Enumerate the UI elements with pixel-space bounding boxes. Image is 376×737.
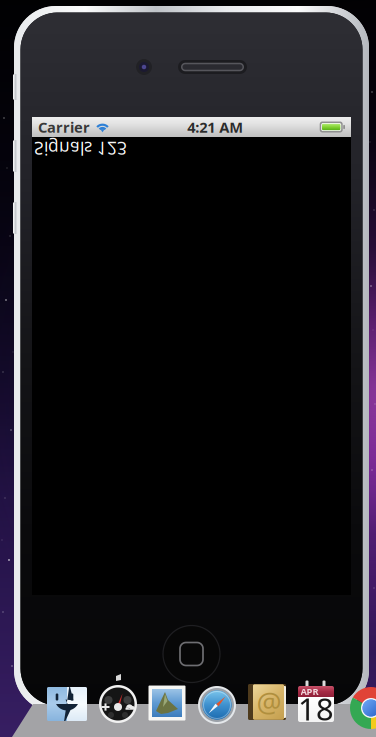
staticText: APR <box>300 685 318 698</box>
button[interactable]: Home <box>161 624 221 684</box>
button[interactable]: Google Chrome <box>350 687 376 729</box>
staticText: @ <box>256 683 281 721</box>
button[interactable]: Calendar <box>298 686 334 722</box>
staticText: 18 <box>298 688 334 729</box>
button[interactable]: Finder <box>47 687 87 721</box>
button[interactable]: Mail <box>148 685 185 720</box>
staticText: Carrier <box>38 117 90 137</box>
staticText: Signals 123 <box>34 137 127 160</box>
button[interactable]: Safari <box>198 686 236 724</box>
button[interactable]: Dashboard <box>99 685 137 723</box>
staticText: 4:21 AM <box>187 117 243 137</box>
button[interactable]: Contacts <box>248 684 286 720</box>
